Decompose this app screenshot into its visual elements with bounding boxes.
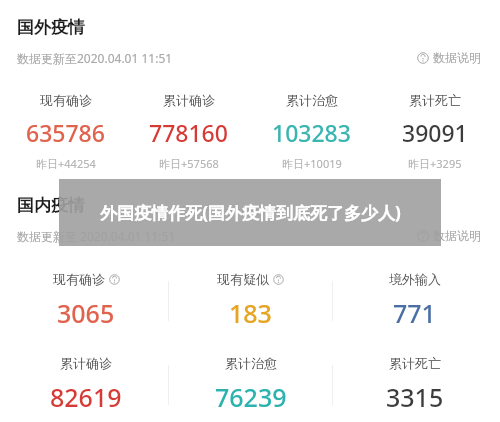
staticText: 82619: [50, 380, 122, 414]
button[interactable]: 累计死亡: [373, 92, 496, 171]
button[interactable]: 累计确诊: [4, 355, 168, 414]
staticText: 数据更新至2020.04.01 11:51: [17, 50, 173, 66]
staticText: 39091: [402, 117, 468, 148]
staticText: 103283: [272, 117, 351, 148]
button[interactable]: 数据说明: [413, 224, 485, 247]
staticText: 累计死亡: [389, 355, 441, 371]
staticText: 累计治愈: [225, 355, 277, 371]
staticText: 外国疫情作死(国外疫情到底死了多少人): [100, 201, 401, 224]
button[interactable]: 累计死亡: [333, 355, 496, 414]
staticText: 累计确诊: [163, 92, 215, 108]
staticText: 现有疑似: [217, 271, 269, 287]
staticText: 昨日+3295: [408, 156, 462, 171]
button[interactable]: 数据说明: [413, 46, 485, 69]
button[interactable]: 现有确诊: [4, 92, 127, 171]
button[interactable]: 现有确诊: [4, 271, 168, 330]
staticText: 数据说明: [433, 50, 481, 65]
button[interactable]: 累计治愈: [169, 355, 332, 414]
staticText: 778160: [149, 117, 228, 148]
button[interactable]: 累计治愈: [250, 92, 373, 171]
staticText: 昨日+57568: [159, 156, 219, 171]
staticText: 3315: [386, 380, 444, 414]
staticText: 771: [393, 296, 436, 330]
staticText: 数据更新至 2020.04.01 11:51: [17, 228, 176, 244]
staticText: 累计死亡: [409, 92, 461, 108]
button[interactable]: 境外输入: [333, 271, 496, 330]
staticText: 境外输入: [389, 271, 441, 287]
button[interactable]: 外国疫情作死(国外疫情到底死了多少人): [59, 179, 441, 246]
staticText: 累计治愈: [286, 92, 338, 108]
staticText: 现有确诊: [53, 271, 105, 287]
staticText: 国内疫情: [17, 195, 85, 216]
staticText: 昨日+10019: [282, 156, 342, 171]
staticText: 数据说明: [433, 228, 481, 243]
staticText: 635786: [26, 117, 105, 148]
staticText: 昨日+44254: [36, 156, 96, 171]
staticText: 国外疫情: [17, 17, 85, 38]
staticText: 累计确诊: [60, 355, 112, 371]
staticText: 183: [229, 296, 272, 330]
button[interactable]: 现有疑似: [169, 271, 332, 330]
staticText: 3065: [57, 296, 115, 330]
staticText: 76239: [215, 380, 287, 414]
staticText: 现有确诊: [40, 92, 92, 108]
button[interactable]: 累计确诊: [127, 92, 250, 171]
